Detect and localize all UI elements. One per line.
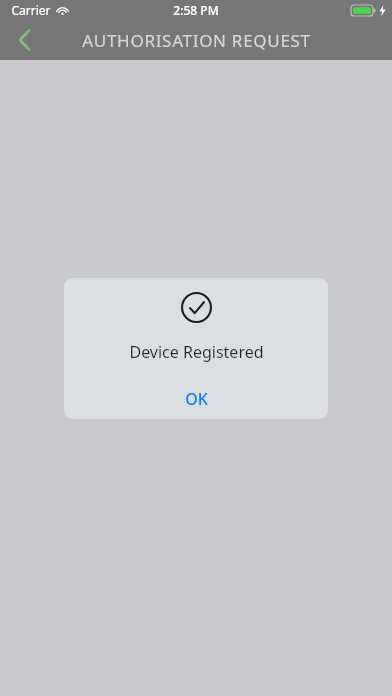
staticText: Device Registered <box>129 341 264 363</box>
staticText: Carrier <box>11 2 51 18</box>
button[interactable]: Back <box>0 20 48 60</box>
staticText: 2:58 PM <box>173 2 219 18</box>
staticText: OK <box>185 388 208 410</box>
button[interactable]: OK <box>64 379 328 419</box>
staticText: AUTHORISATION REQUEST <box>82 29 311 52</box>
staticText: No pending authorisation request <box>76 318 316 338</box>
